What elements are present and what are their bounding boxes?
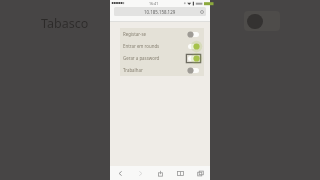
- button[interactable]: Bookmarks: [170, 166, 190, 180]
- button[interactable]: Tabs: [190, 166, 210, 180]
- staticText: 16:41: [149, 1, 159, 6]
- button[interactable]: Forward: [130, 166, 150, 180]
- button[interactable]: Back: [110, 166, 130, 180]
- button[interactable]: Share: [150, 166, 170, 180]
- staticText: Tabasco: [41, 15, 89, 32]
- staticText: Entrar em rounds: [123, 43, 160, 49]
- button[interactable]: Gerar a password: [120, 52, 204, 64]
- staticText: Trabalhar: [123, 67, 143, 73]
- button[interactable]: Entrar em rounds: [120, 40, 204, 52]
- button[interactable]: 10.185.158.129: [114, 7, 206, 16]
- button[interactable]: Trabalhar: [120, 64, 204, 76]
- button[interactable]: Registar-se: [120, 28, 204, 40]
- other: Reload: [200, 10, 204, 14]
- staticText: Registar-se: [123, 31, 146, 37]
- staticText: 10.185.158.129: [144, 9, 176, 15]
- staticText: Gerar a password: [123, 55, 160, 61]
